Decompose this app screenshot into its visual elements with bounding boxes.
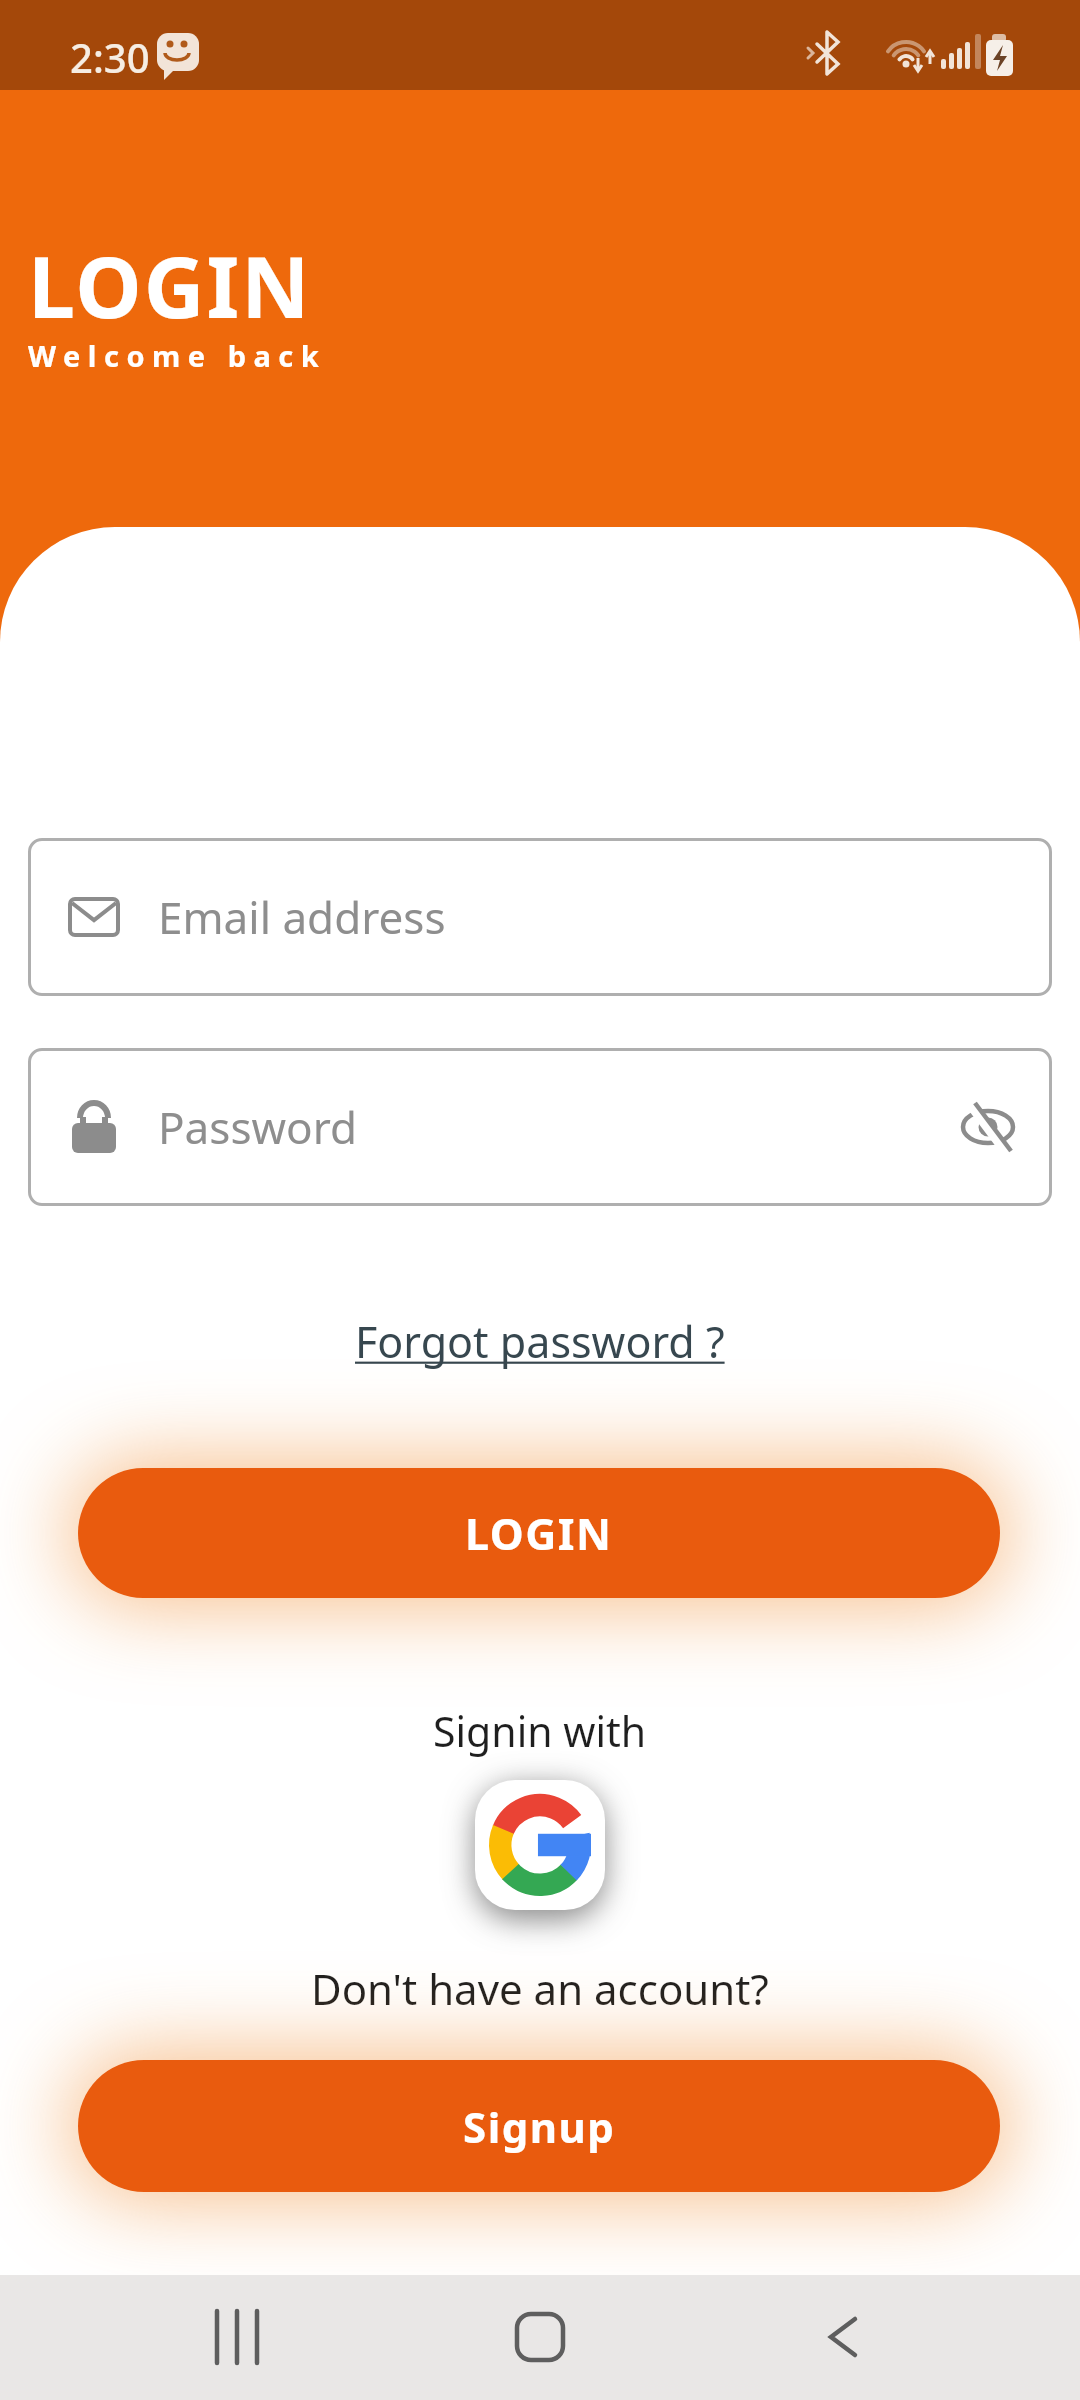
staticText: Password — [158, 1097, 358, 1157]
staticText: Don't have an account? — [311, 1960, 769, 2017]
button[interactable] — [475, 1780, 605, 1910]
staticText: 2:30 — [70, 30, 150, 84]
button[interactable] — [720, 2275, 1080, 2400]
staticText: Email address — [158, 887, 446, 947]
staticText: Welcome back — [28, 336, 327, 375]
button[interactable]: LOGIN — [78, 1468, 1000, 1598]
staticText: Signin with — [433, 1703, 647, 1759]
button[interactable]: Signup — [78, 2060, 1000, 2192]
button[interactable] — [360, 2275, 720, 2400]
button[interactable] — [0, 2275, 360, 2400]
staticText: Signup — [463, 2098, 616, 2155]
staticText: LOGIN — [465, 1504, 613, 1563]
button[interactable]: Password — [28, 1048, 1052, 1206]
button[interactable]: Forgot password ? — [355, 1312, 725, 1371]
staticText: LOGIN — [28, 228, 312, 342]
button[interactable]: Email address — [28, 838, 1052, 996]
